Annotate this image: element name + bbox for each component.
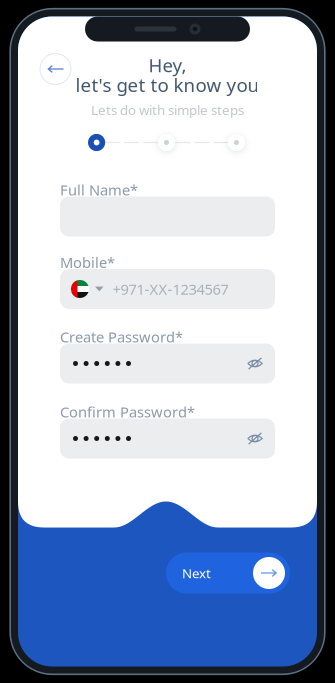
button[interactable]: Next: [166, 552, 290, 593]
button[interactable]: Country code: United Arab Emirates: [71, 269, 103, 309]
staticText: Full Name*: [60, 180, 138, 199]
staticText: let's get to know you: [75, 72, 259, 97]
button[interactable]: Password field, show password: [60, 418, 275, 458]
staticText: +971-XX-1234567: [112, 279, 228, 299]
staticText: Lets do with simple steps: [91, 101, 244, 119]
staticText: Mobile*: [60, 252, 115, 272]
staticText: Confirm Password*: [60, 402, 195, 421]
staticText: Create Password*: [60, 327, 183, 346]
button[interactable]: Back: [40, 53, 71, 84]
staticText: Next: [182, 564, 211, 582]
button[interactable]: Password field, show password: [60, 343, 275, 383]
staticText: Hey,: [148, 52, 186, 77]
